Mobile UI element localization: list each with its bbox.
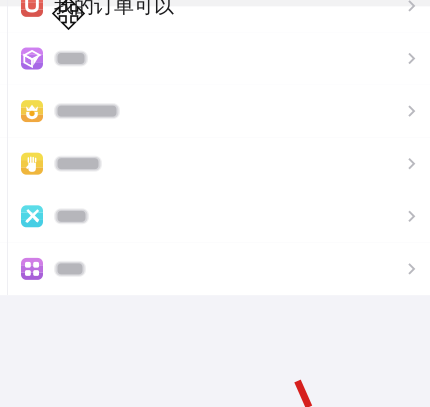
button[interactable]: List item [0, 32, 430, 85]
button[interactable]: List item [0, 243, 430, 295]
button[interactable]: List item [0, 190, 430, 243]
button[interactable]: List item [0, 137, 430, 190]
staticText: 我的订单可以 [54, 0, 174, 18]
button[interactable]: List item [0, 0, 430, 32]
button[interactable]: List item [0, 85, 430, 137]
